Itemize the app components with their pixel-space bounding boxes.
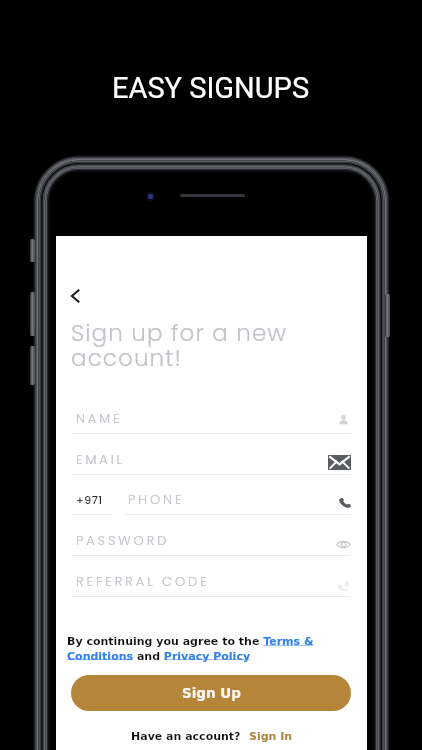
staticText: Sign Up <box>182 685 241 701</box>
staticText: EASY SIGNUPS <box>112 71 310 105</box>
staticText: PASSWORD <box>76 531 170 549</box>
button[interactable]: Back <box>60 281 90 311</box>
button[interactable]: NAME <box>72 403 351 434</box>
staticText: Sign up for a new account! <box>71 317 288 374</box>
staticText: NAME <box>76 409 123 427</box>
staticText: EMAIL <box>76 450 125 468</box>
button[interactable]: PASSWORD <box>72 525 351 556</box>
staticText: +971 <box>76 492 103 507</box>
button[interactable]: EMAIL <box>72 444 351 475</box>
staticText: REFERRAL CODE <box>76 572 210 590</box>
staticText: By continuing you agree to the Terms & C… <box>67 635 319 662</box>
staticText: Have an account? <box>131 730 249 743</box>
button[interactable]: REFERRAL CODE <box>72 566 351 597</box>
button[interactable]: Sign In <box>249 730 293 743</box>
button[interactable]: Sign Up <box>71 675 351 711</box>
button[interactable]: PHONE <box>124 484 351 515</box>
staticText: PHONE <box>128 490 185 508</box>
staticText: Sign In <box>249 730 293 743</box>
button[interactable]: +971 <box>72 484 112 515</box>
